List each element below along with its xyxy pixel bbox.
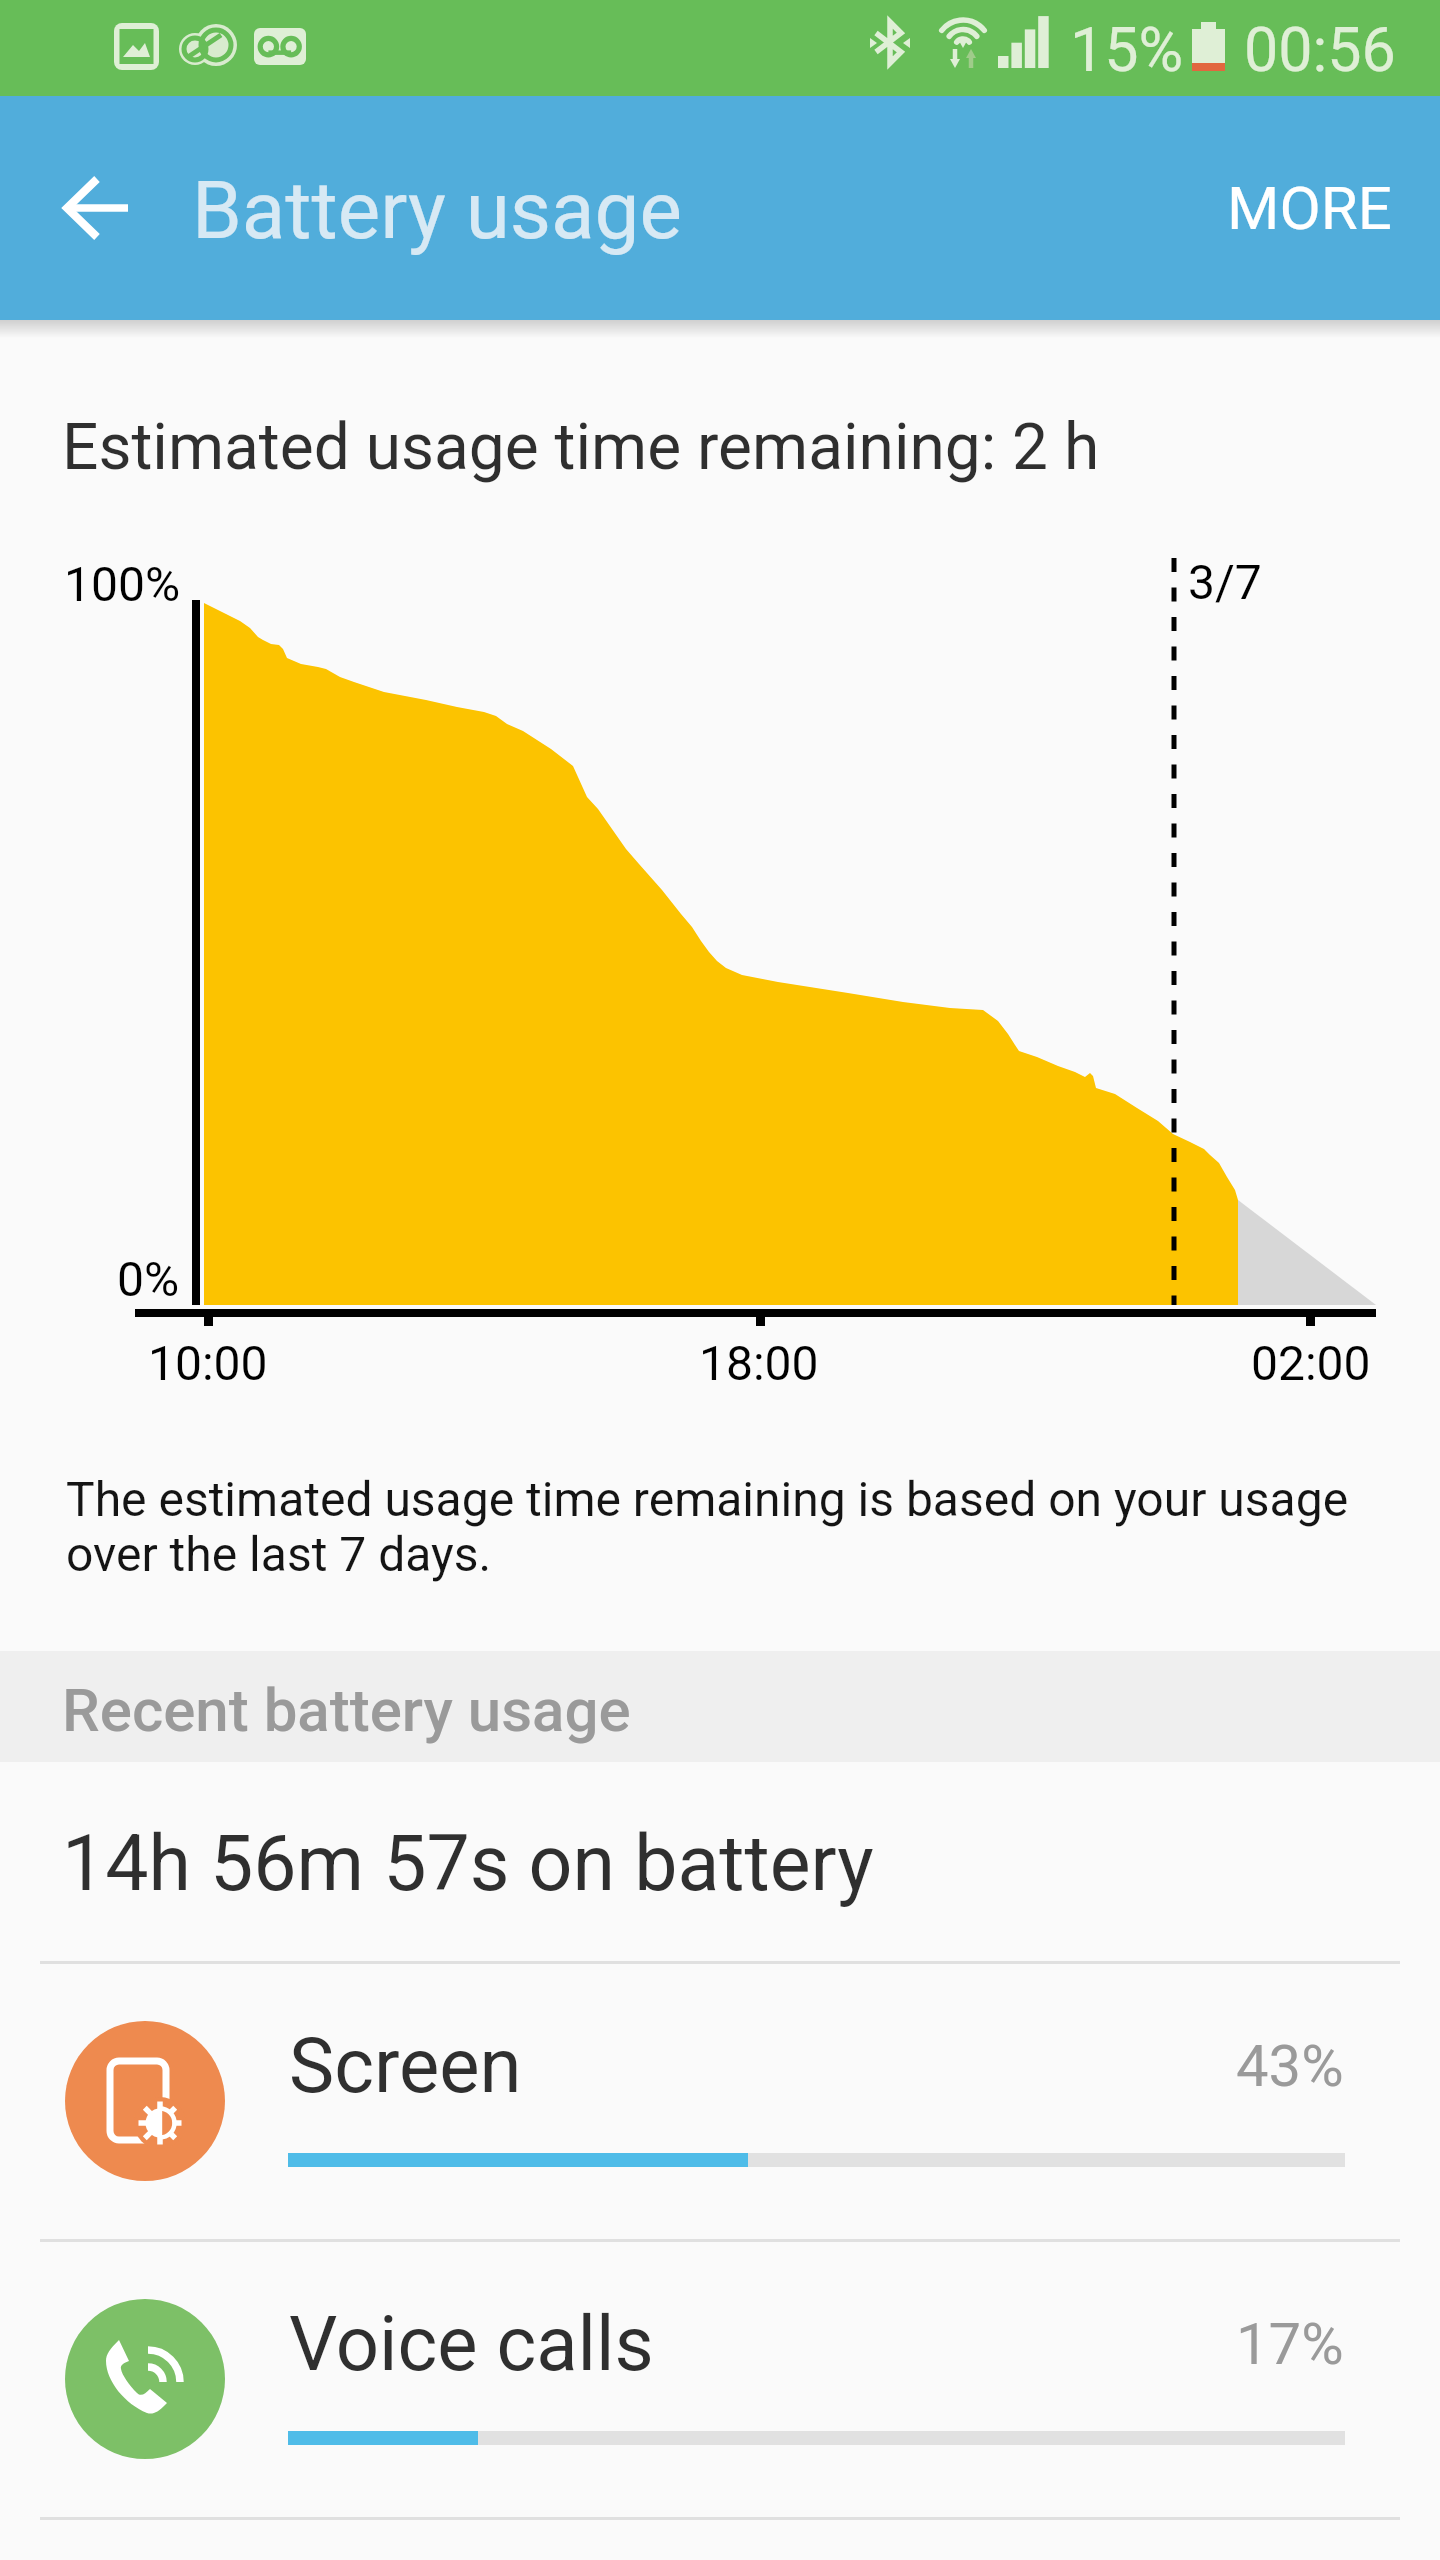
button[interactable]: Navigate up — [24, 98, 168, 206]
staticText: 100% — [64, 556, 181, 612]
staticText: 14h 56m 57s on battery — [62, 1819, 874, 1909]
staticText: 02:00 — [1251, 1335, 1371, 1391]
button[interactable]: Voice calls — [0, 2240, 1440, 2518]
button[interactable]: MORE — [1201, 151, 1418, 265]
staticText: Voice calls — [289, 2299, 654, 2388]
staticText: 43% — [1236, 2032, 1344, 2100]
staticText: 18:00 — [699, 1335, 819, 1391]
staticText: 15% — [1070, 14, 1184, 85]
staticText: 10:00 — [148, 1335, 268, 1391]
staticText: MORE — [1227, 173, 1392, 243]
staticText: 00:56 — [1244, 14, 1396, 85]
staticText: 3/7 — [1188, 554, 1262, 610]
staticText: Battery usage — [192, 164, 682, 258]
staticText: Recent battery usage — [62, 1675, 631, 1745]
staticText: 17% — [1236, 2310, 1344, 2378]
button[interactable]: Screen — [0, 1962, 1440, 2240]
staticText: Screen — [289, 2021, 522, 2110]
staticText: Estimated usage time remaining: 2 h — [62, 410, 1100, 485]
staticText: 0% — [117, 1251, 180, 1307]
staticText: The estimated usage time remaining is ba… — [66, 1471, 1349, 1583]
